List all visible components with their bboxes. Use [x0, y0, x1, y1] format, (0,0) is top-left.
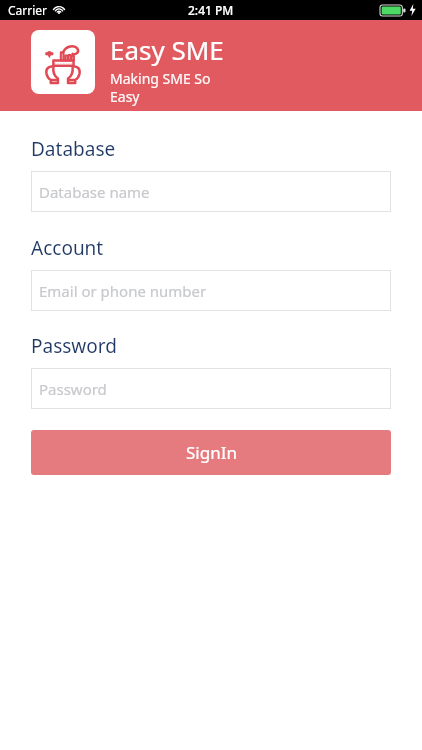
staticText: SignIn [186, 441, 237, 464]
staticText: Email or phone number [39, 281, 207, 301]
staticText: Carrier [8, 2, 48, 18]
staticText: Making SME So Easy [110, 69, 230, 106]
button[interactable]: Password [31, 368, 391, 409]
button[interactable]: Email or phone number [31, 270, 391, 311]
button[interactable]: SignIn [31, 430, 391, 475]
staticText: 2:41 PM [188, 2, 234, 18]
staticText: Database name [39, 182, 150, 202]
staticText: Database [31, 136, 116, 162]
staticText: Easy SME [110, 32, 224, 67]
staticText: Account [31, 235, 104, 261]
staticText: Password [31, 333, 117, 359]
button[interactable]: Database name [31, 171, 391, 212]
staticText: Password [39, 379, 107, 399]
